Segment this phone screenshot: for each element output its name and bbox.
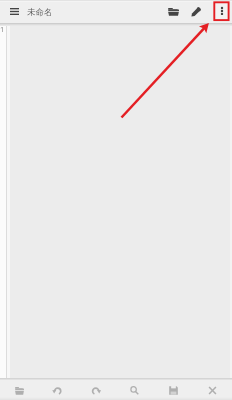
button[interactable]: Edit — [184, 0, 207, 23]
staticText: 1 — [0, 24, 5, 34]
button[interactable]: Save — [154, 380, 193, 400]
button[interactable]: Undo — [38, 380, 76, 400]
button[interactable]: Open folder — [162, 0, 185, 23]
button[interactable]: Navigation menu — [2, 0, 26, 23]
button[interactable]: Search — [115, 380, 154, 400]
button[interactable]: Open — [0, 380, 38, 400]
button[interactable]: Redo — [76, 380, 115, 400]
button[interactable]: More options — [210, 0, 232, 23]
button[interactable]: Close — [193, 380, 232, 400]
staticText: 未命名 — [27, 7, 53, 18]
